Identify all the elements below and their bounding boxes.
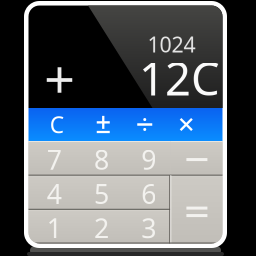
button[interactable]: Divide [120,108,169,141]
button[interactable]: 4 [28,175,76,209]
staticText: C [50,109,64,139]
button[interactable]: Minus [170,141,222,175]
button[interactable]: 3 [123,209,170,243]
staticText: 6 [141,176,156,211]
button[interactable]: 5 [76,175,123,209]
staticText: 1024 [147,30,195,58]
button[interactable]: C [32,108,81,141]
button[interactable]: Plus or minus [79,108,127,141]
button[interactable]: 7 [28,141,76,175]
button[interactable]: 2 [76,209,123,243]
staticText: 1 [47,210,62,245]
button[interactable]: 1 [28,209,76,243]
button[interactable]: 9 [123,141,170,175]
button[interactable]: Multiply [162,108,210,141]
button[interactable]: 6 [123,175,170,209]
button[interactable]: Equals [170,175,222,243]
staticText: 5 [94,176,109,211]
staticText: 2 [94,210,109,245]
staticText: 4 [47,176,62,211]
staticText: 9 [141,142,156,177]
staticText: 3 [141,210,156,245]
staticText: 8 [94,142,109,177]
staticText: 12C [139,48,220,108]
staticText: 7 [47,142,62,177]
button[interactable]: 8 [76,141,123,175]
